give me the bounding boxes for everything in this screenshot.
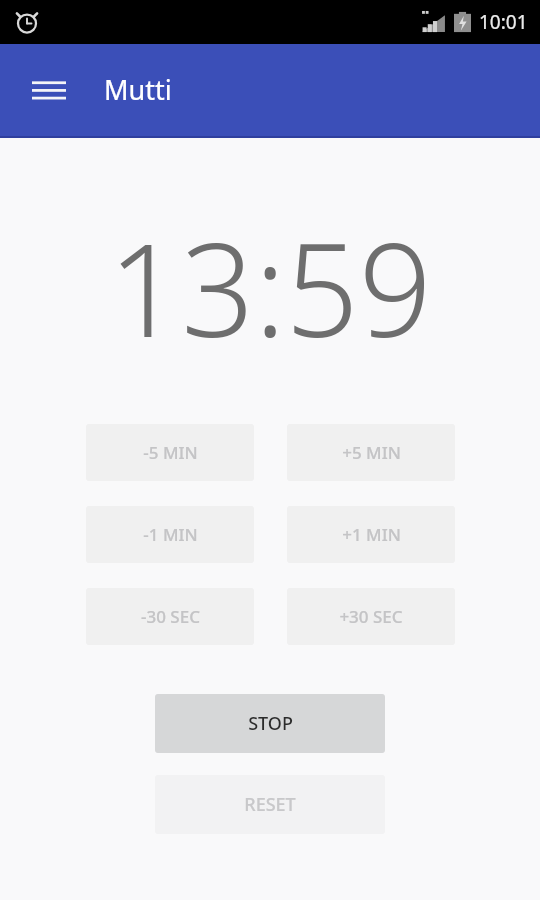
button[interactable]: RESET bbox=[155, 775, 385, 834]
staticText: Mutti bbox=[104, 71, 172, 108]
button[interactable]: -1 MIN bbox=[86, 506, 254, 563]
staticText: +30 SEC bbox=[339, 605, 403, 628]
button[interactable]: +1 MIN bbox=[287, 506, 455, 563]
staticText: +1 MIN bbox=[342, 523, 401, 546]
button[interactable]: +5 MIN bbox=[287, 424, 455, 481]
staticText: +5 MIN bbox=[342, 441, 401, 464]
button[interactable]: -5 MIN bbox=[86, 424, 254, 481]
button[interactable]: STOP bbox=[155, 694, 385, 753]
button[interactable]: -30 SEC bbox=[86, 588, 254, 645]
staticText: -30 SEC bbox=[141, 605, 200, 628]
staticText: 13:59 bbox=[108, 200, 432, 374]
staticText: -1 MIN bbox=[143, 523, 198, 546]
button[interactable]: +30 SEC bbox=[287, 588, 455, 645]
staticText: RESET bbox=[244, 792, 296, 817]
staticText: -5 MIN bbox=[143, 441, 198, 464]
staticText: 10:01 bbox=[479, 9, 528, 35]
button[interactable]: Open navigation menu bbox=[20, 61, 78, 119]
staticText: STOP bbox=[248, 711, 293, 736]
